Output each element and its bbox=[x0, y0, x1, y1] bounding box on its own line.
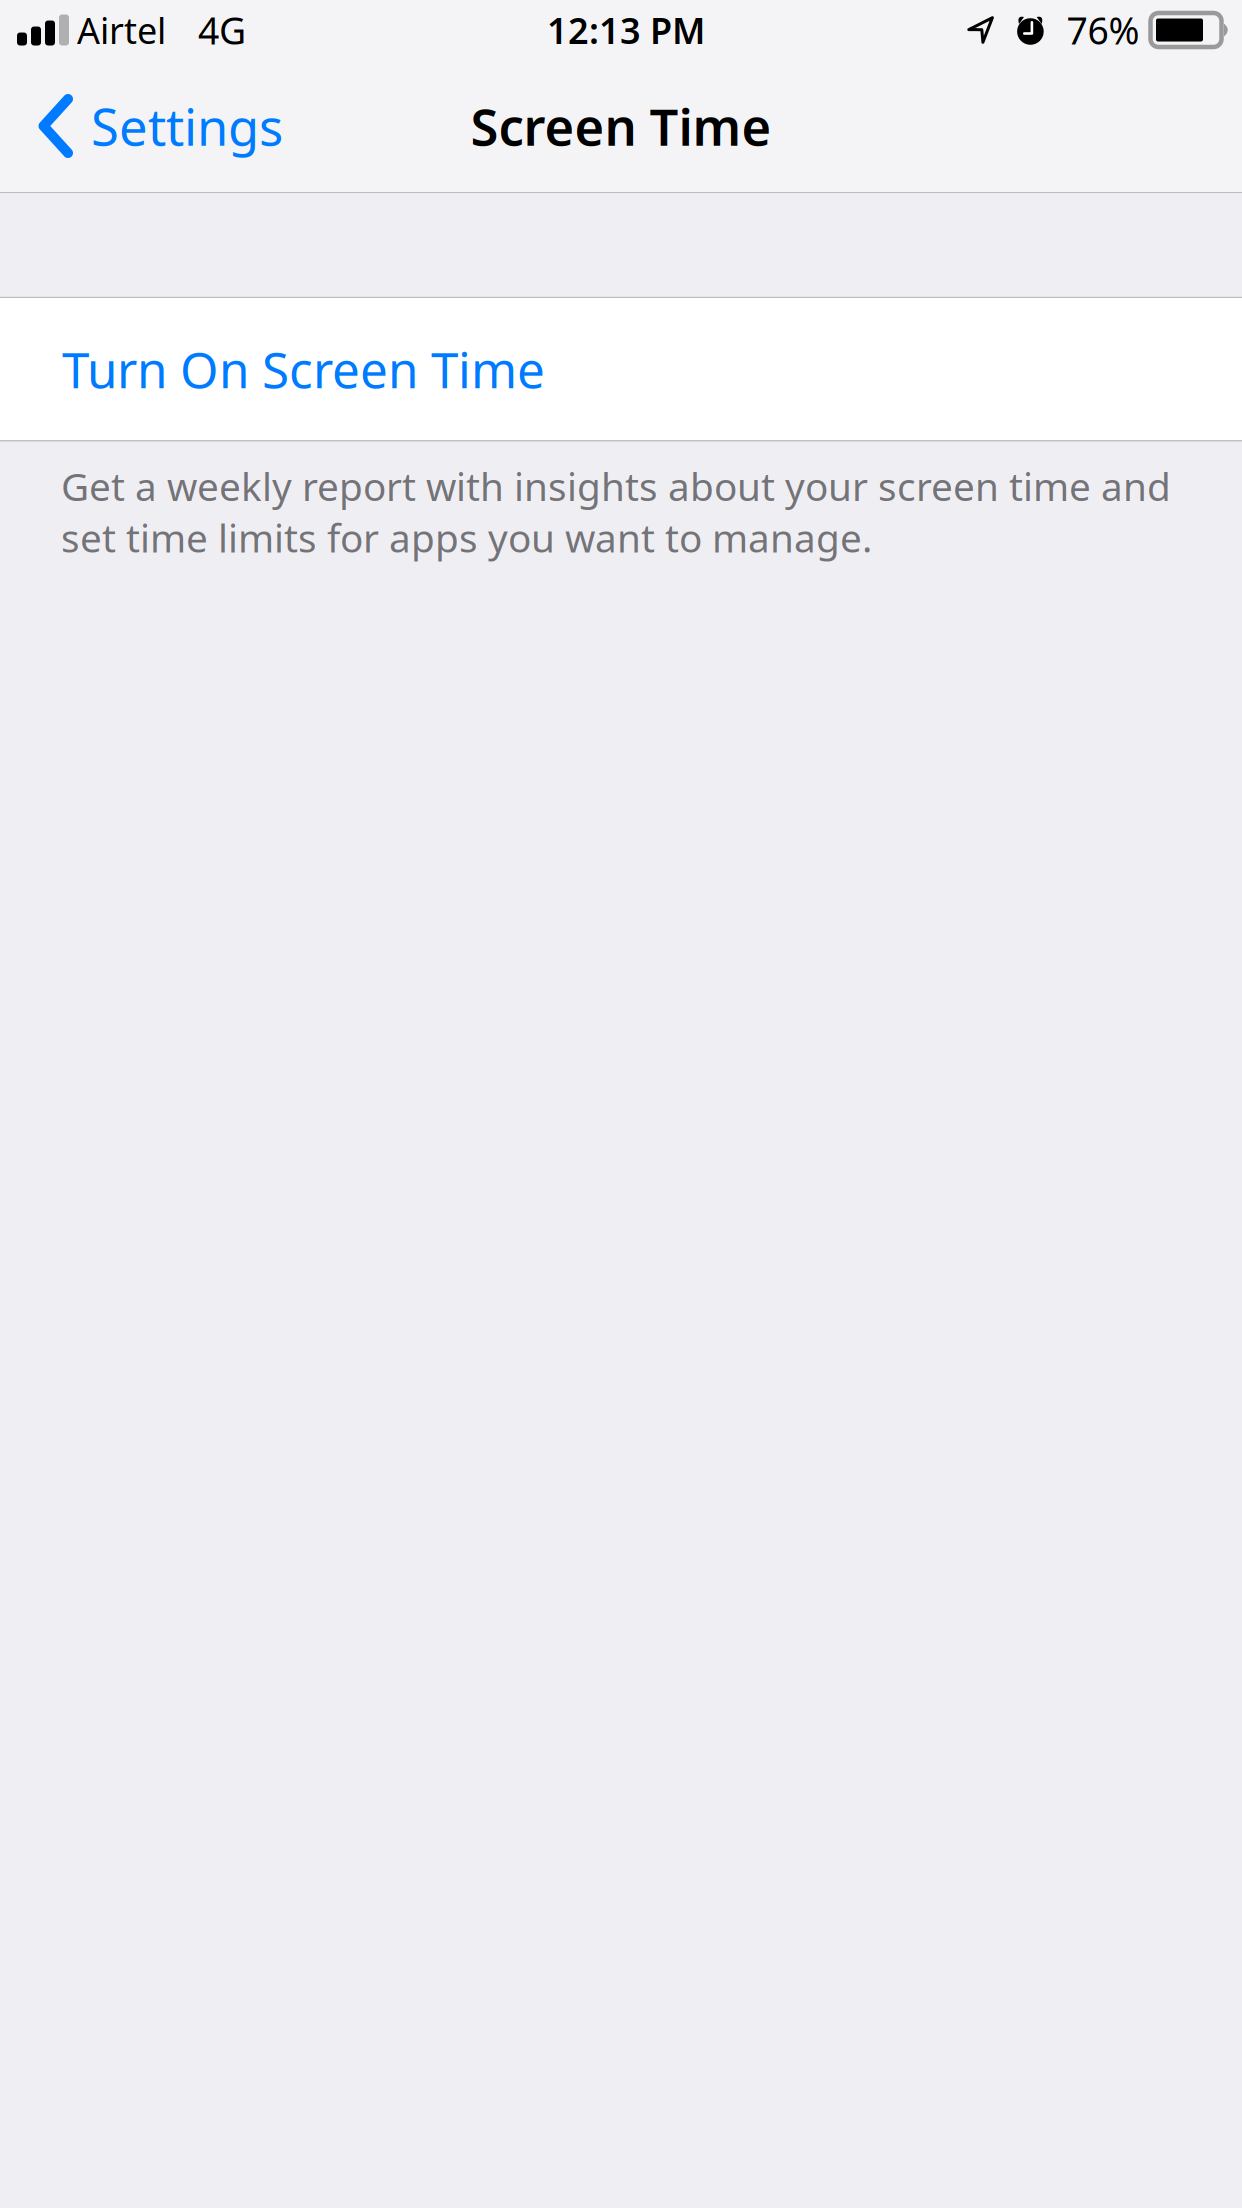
button[interactable]: Settings bbox=[0, 60, 305, 192]
staticText: Get a weekly report with insights about … bbox=[61, 460, 1171, 563]
staticText: 76% bbox=[1066, 5, 1139, 55]
staticText: Screen Time bbox=[470, 92, 771, 160]
staticText: Airtel bbox=[77, 6, 166, 54]
staticText: Settings bbox=[91, 92, 283, 160]
staticText: 12:13 PM bbox=[547, 6, 705, 54]
button[interactable]: Turn On Screen Time bbox=[0, 298, 1242, 440]
staticText: Turn On Screen Time bbox=[62, 336, 545, 402]
staticText: 4G bbox=[198, 5, 246, 55]
